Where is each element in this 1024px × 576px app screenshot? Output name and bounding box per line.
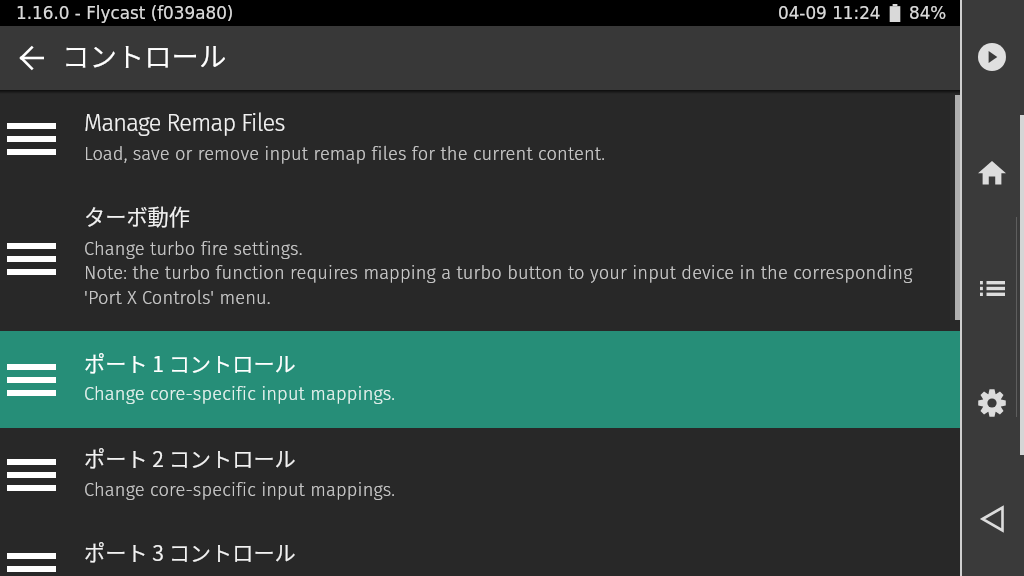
button[interactable]: Play xyxy=(961,26,1023,88)
button[interactable] xyxy=(0,331,962,428)
staticText: ポート 2 コントロール xyxy=(84,442,296,473)
staticText: Change core-specific input mappings. xyxy=(84,383,396,405)
button[interactable] xyxy=(0,428,962,522)
button[interactable]: Home xyxy=(961,142,1023,204)
staticText: 'Port X Controls' menu. xyxy=(84,287,271,309)
staticText: 04-09 11:24 xyxy=(778,3,881,23)
staticText: ターボ動作 xyxy=(84,200,190,231)
button[interactable]: Back xyxy=(6,32,58,84)
button[interactable] xyxy=(0,187,962,331)
staticText: ポート 1 コントロール xyxy=(84,347,296,378)
button[interactable]: Playlists xyxy=(961,257,1023,319)
staticText: Change turbo fire settings. xyxy=(84,238,303,260)
staticText: Manage Remap Files xyxy=(84,109,285,137)
button[interactable]: Back xyxy=(961,488,1023,550)
button[interactable]: Settings xyxy=(961,372,1023,434)
button[interactable] xyxy=(0,92,962,187)
staticText: Note: the turbo function requires mappin… xyxy=(84,262,913,284)
staticText: 1.16.0 - Flycast (f039a80) xyxy=(16,3,234,23)
staticText: Change core-specific input mappings. xyxy=(84,479,396,501)
staticText: Load, save or remove input remap files f… xyxy=(84,143,606,165)
staticText: 84% xyxy=(909,3,947,23)
staticText: ポート 3 コントロール xyxy=(84,536,296,567)
button[interactable] xyxy=(0,522,962,576)
staticText: コントロール xyxy=(62,35,227,75)
